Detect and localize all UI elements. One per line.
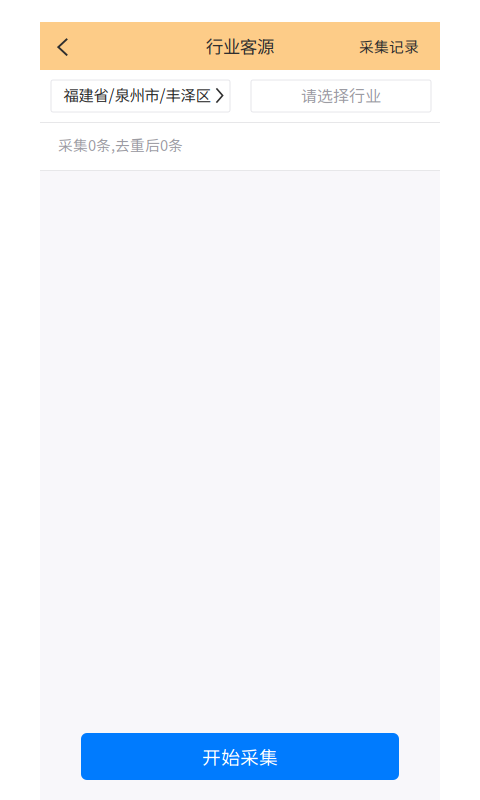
staticText: 开始采集 <box>202 743 278 770</box>
staticText: 采集0条,去重后0条 <box>58 134 183 155</box>
staticText: 请选择行业 <box>301 83 381 107</box>
staticText: 行业客源 <box>206 33 274 59</box>
button[interactable]: 开始采集 <box>81 733 399 780</box>
button[interactable]: 请选择行业 <box>251 80 431 112</box>
button[interactable]: Back <box>40 22 84 70</box>
staticText: 采集记录 <box>359 35 419 57</box>
staticText: 福建省/泉州市/丰泽区 <box>63 83 210 106</box>
button[interactable]: 采集记录 <box>359 22 440 70</box>
button[interactable]: 福建省/泉州市/丰泽区 <box>51 80 230 112</box>
